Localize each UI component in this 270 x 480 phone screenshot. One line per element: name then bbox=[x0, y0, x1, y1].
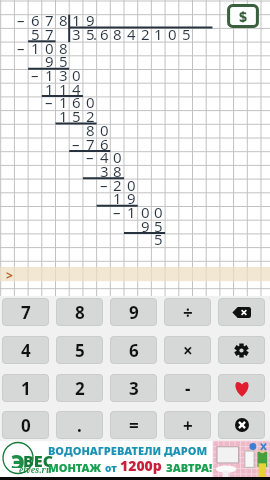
other: Settings bbox=[234, 343, 249, 358]
staticText: Э bbox=[11, 448, 25, 468]
staticText: 4 bbox=[21, 339, 31, 362]
staticText: . bbox=[77, 414, 82, 437]
staticText: 0 bbox=[113, 147, 122, 167]
staticText: 8 bbox=[59, 38, 68, 58]
staticText: 3 bbox=[72, 24, 81, 44]
button[interactable]: 1 bbox=[2, 374, 49, 402]
staticText: 1 bbox=[59, 106, 68, 126]
staticText: 0 bbox=[86, 92, 95, 112]
other: Favourite bbox=[233, 380, 251, 397]
staticText: 0 bbox=[45, 38, 54, 58]
staticText: 9 bbox=[45, 51, 54, 71]
staticText: 0 bbox=[21, 414, 31, 437]
button[interactable]: 5 bbox=[56, 336, 103, 364]
staticText: 0 bbox=[141, 202, 150, 222]
staticText: 1 bbox=[113, 188, 122, 208]
staticText: 2 bbox=[141, 24, 150, 44]
other: Clear bbox=[235, 418, 249, 432]
staticText: 9 bbox=[86, 10, 95, 30]
button[interactable]: ÷ bbox=[164, 298, 211, 326]
staticText: elves.ru bbox=[19, 464, 52, 475]
button[interactable]: Clear bbox=[218, 411, 265, 439]
staticText: 7 bbox=[45, 24, 54, 44]
staticText: 6 bbox=[31, 10, 40, 30]
button[interactable]: Settings bbox=[218, 336, 265, 364]
staticText: 0 bbox=[127, 175, 136, 195]
button[interactable]: Э bbox=[0, 441, 270, 477]
button[interactable]: . bbox=[56, 411, 103, 439]
staticText: 5 bbox=[182, 24, 191, 44]
button[interactable]: 6 bbox=[110, 336, 157, 364]
button[interactable]: 3 bbox=[110, 374, 157, 402]
staticText: 8 bbox=[75, 301, 85, 324]
staticText: ВОДОНАГРЕВАТЕЛИ ДАРОМ bbox=[48, 443, 208, 458]
button[interactable]: 8 bbox=[56, 298, 103, 326]
staticText: 3 bbox=[100, 161, 109, 181]
button[interactable]: Favourite bbox=[218, 374, 265, 402]
staticText: 5 bbox=[72, 106, 81, 126]
staticText: 5 bbox=[86, 24, 95, 44]
staticText: 8 bbox=[86, 120, 95, 140]
staticText: 1 bbox=[45, 79, 54, 99]
staticText: 1 bbox=[45, 65, 54, 85]
button[interactable]: 4 bbox=[2, 336, 49, 364]
staticText: 1 bbox=[59, 79, 68, 99]
button[interactable]: 7 bbox=[2, 298, 49, 326]
staticText: 1200р bbox=[120, 456, 162, 475]
staticText: 5 bbox=[59, 51, 68, 71]
staticText: 1 bbox=[31, 38, 40, 58]
button[interactable]: 9 bbox=[110, 298, 157, 326]
staticText: – bbox=[113, 202, 121, 222]
staticText: 6 bbox=[129, 339, 139, 362]
staticText: 7 bbox=[21, 301, 31, 324]
button[interactable]: 2 bbox=[56, 374, 103, 402]
staticText: 0 bbox=[168, 24, 177, 44]
staticText: 4 bbox=[100, 147, 109, 167]
staticText: 1 bbox=[154, 24, 163, 44]
staticText: – bbox=[17, 10, 25, 30]
staticText: – bbox=[45, 92, 53, 112]
staticText: 1 bbox=[21, 377, 31, 400]
staticText: – bbox=[72, 134, 80, 154]
button[interactable]: + bbox=[164, 411, 211, 439]
staticText: 6 bbox=[100, 134, 109, 154]
staticText: – bbox=[31, 65, 39, 85]
staticText: 9 bbox=[127, 188, 136, 208]
staticText: . bbox=[93, 24, 98, 44]
staticText: 9 bbox=[129, 301, 139, 324]
staticText: ЗАВТРА! bbox=[166, 460, 213, 475]
staticText: 6 bbox=[72, 92, 81, 112]
staticText: – bbox=[100, 175, 108, 195]
staticText: 1 bbox=[59, 92, 68, 112]
staticText: 7 bbox=[86, 134, 95, 154]
staticText: $ bbox=[239, 7, 248, 26]
staticText: – bbox=[17, 38, 25, 58]
button[interactable]: 0 bbox=[2, 411, 49, 439]
staticText: 9 bbox=[141, 216, 150, 236]
staticText: 2 bbox=[113, 175, 122, 195]
other: Backspace bbox=[232, 307, 251, 318]
staticText: 5 bbox=[154, 216, 163, 236]
button[interactable]: Backspace bbox=[218, 298, 265, 326]
staticText: 0 bbox=[72, 65, 81, 85]
staticText: 8 bbox=[113, 161, 122, 181]
staticText: 1 bbox=[72, 10, 81, 30]
staticText: 3 bbox=[129, 377, 139, 400]
button[interactable]: - bbox=[164, 374, 211, 402]
staticText: 8 bbox=[113, 24, 122, 44]
staticText: × bbox=[183, 339, 193, 362]
staticText: 5 bbox=[31, 24, 40, 44]
staticText: 4 bbox=[72, 79, 81, 99]
staticText: 0 bbox=[100, 120, 109, 140]
staticText: 7 bbox=[45, 10, 54, 30]
button[interactable]: Purchase bbox=[227, 4, 259, 28]
staticText: – bbox=[86, 147, 94, 167]
staticText: 6 bbox=[100, 24, 109, 44]
button[interactable]: = bbox=[110, 411, 157, 439]
staticText: 8 bbox=[59, 10, 68, 30]
button[interactable]: × bbox=[164, 336, 211, 364]
staticText: + bbox=[183, 414, 193, 437]
staticText: > bbox=[6, 267, 13, 281]
staticText: 5 bbox=[154, 229, 163, 249]
staticText: 4 bbox=[127, 24, 136, 44]
